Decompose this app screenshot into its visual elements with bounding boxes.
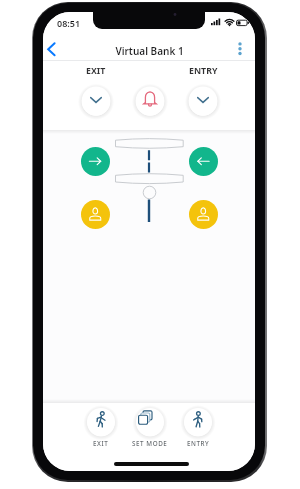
staticText: 08:51 (57, 17, 81, 29)
button[interactable]: Exit (77, 404, 125, 458)
button[interactable]: Entry occupancy (189, 200, 218, 229)
staticText: ENTRY (187, 439, 210, 448)
staticText: SET MODE (132, 439, 168, 448)
staticText: EXIT (93, 439, 109, 448)
button[interactable]: Entry (185, 83, 221, 119)
button[interactable]: Set mode (126, 404, 174, 458)
button[interactable]: Back (43, 38, 65, 60)
staticText: Virtual Bank 1 (115, 44, 184, 58)
button[interactable]: Exit direction (81, 147, 110, 176)
button[interactable]: Alarm (132, 83, 168, 119)
button[interactable]: More options (232, 38, 248, 60)
button[interactable]: Exit occupancy (81, 200, 110, 229)
button[interactable]: Exit (78, 83, 114, 119)
staticText: ENTRY (189, 65, 218, 75)
staticText: EXIT (86, 65, 106, 75)
button[interactable]: Entry direction (189, 147, 218, 176)
button[interactable]: Entry (174, 404, 222, 458)
